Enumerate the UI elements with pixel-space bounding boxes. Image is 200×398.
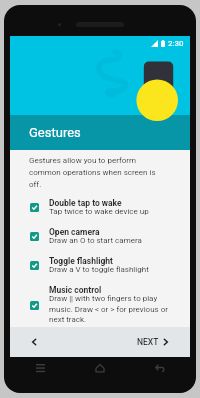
staticText: Gestures (29, 125, 81, 140)
button[interactable]: Music control (29, 285, 171, 325)
staticText: Double tap to wake (49, 198, 122, 208)
button[interactable]: Recents (10, 352, 70, 383)
staticText: Toggle flashlight (49, 256, 113, 266)
button[interactable]: NEXT (123, 327, 190, 357)
staticText: NEXT (137, 337, 159, 347)
button[interactable]: Back (130, 352, 190, 383)
staticText: Tap twice to wake device up (49, 207, 149, 216)
staticText: Draw a V to toggle flashlight (49, 265, 149, 274)
staticText: Draw || with two fingers to play music. … (49, 294, 171, 324)
staticText: Open camera (49, 227, 100, 237)
button[interactable]: Toggle flashlight (29, 256, 171, 275)
button[interactable]: Home (70, 352, 130, 383)
button[interactable]: Previous (10, 327, 57, 357)
staticText: 2:30 (168, 39, 184, 48)
staticText: Gestures allow you to perform common ope… (29, 156, 165, 189)
staticText: Music control (49, 285, 102, 295)
button[interactable]: Open camera (29, 227, 171, 246)
button[interactable]: Double tap to wake (29, 198, 171, 217)
staticText: Draw an O to start camera (49, 236, 142, 245)
